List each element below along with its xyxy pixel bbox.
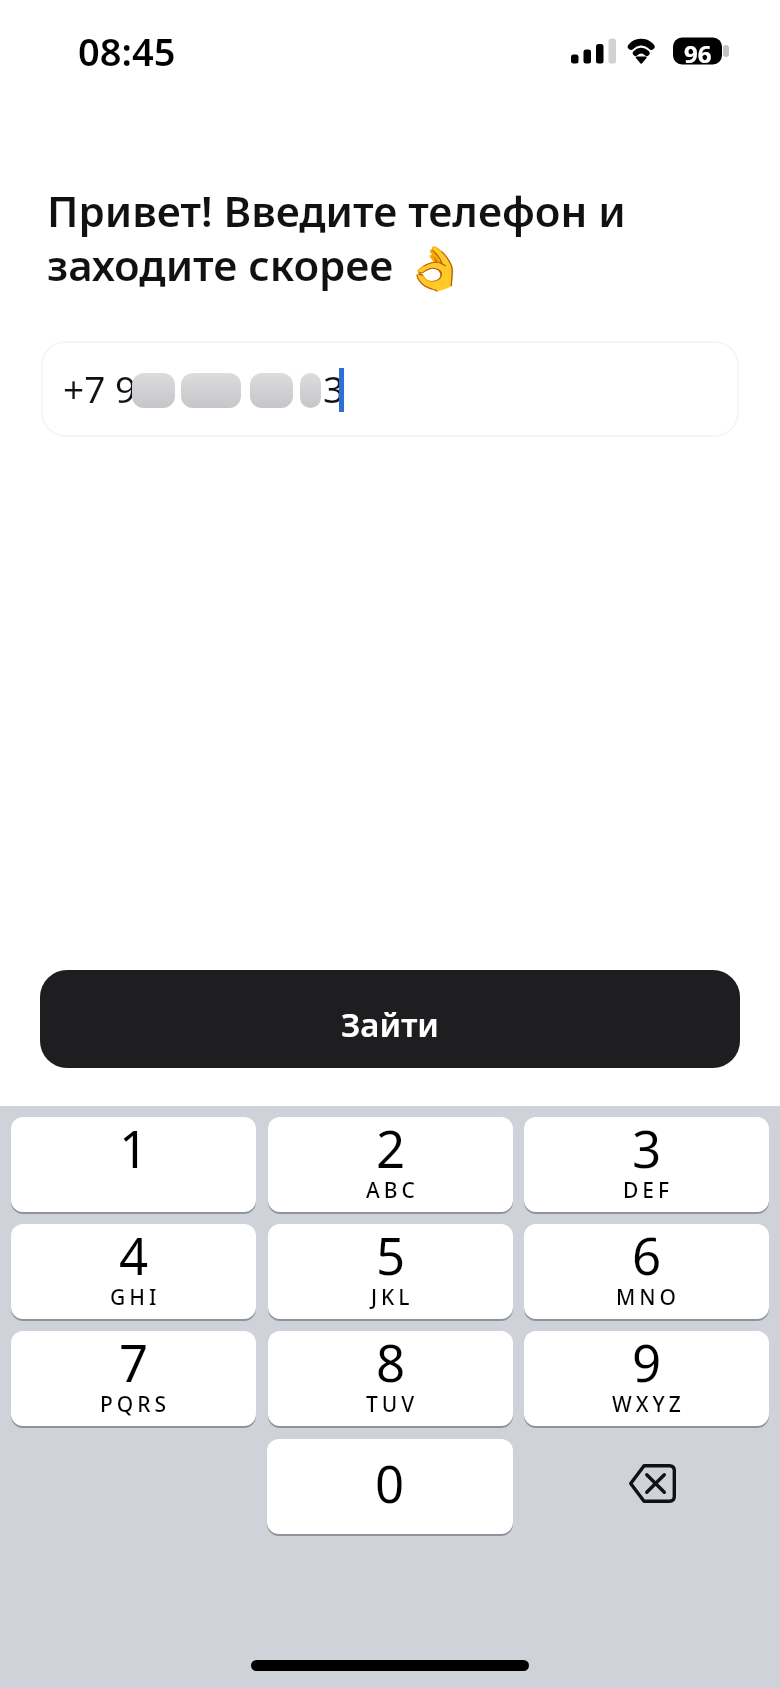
staticText: 96 bbox=[684, 37, 712, 64]
staticText: 1 bbox=[119, 1117, 149, 1182]
staticText: ABC bbox=[366, 1176, 419, 1205]
staticText: 08:45 bbox=[78, 25, 176, 77]
staticText: 6 bbox=[632, 1224, 662, 1289]
staticText: 👌 bbox=[400, 244, 471, 294]
button[interactable]: 6 bbox=[524, 1224, 769, 1319]
staticText: 5 bbox=[376, 1224, 406, 1289]
staticText: 0 bbox=[375, 1448, 405, 1517]
button[interactable]: 9 bbox=[524, 1331, 769, 1426]
staticText: 4 bbox=[119, 1224, 149, 1289]
button[interactable]: 7 bbox=[11, 1331, 256, 1426]
staticText: JKL bbox=[371, 1283, 414, 1312]
button[interactable]: 3 bbox=[524, 1117, 769, 1212]
staticText: 8 bbox=[376, 1331, 406, 1396]
staticText: TUV bbox=[366, 1390, 419, 1419]
staticText: PQRS bbox=[100, 1390, 171, 1419]
button[interactable]: 8 bbox=[268, 1331, 513, 1426]
staticText: Зайти bbox=[341, 1002, 439, 1047]
staticText: 2 bbox=[376, 1117, 406, 1182]
staticText: заходите скорее bbox=[47, 236, 394, 293]
button[interactable]: 2 bbox=[268, 1117, 513, 1212]
button[interactable]: Backspace bbox=[524, 1439, 769, 1534]
staticText: MNO bbox=[616, 1283, 681, 1312]
staticText: +7 9 bbox=[63, 363, 137, 413]
button[interactable]: 1 bbox=[11, 1117, 256, 1212]
button[interactable]: 5 bbox=[268, 1224, 513, 1319]
staticText: Привет! Введите телефон и bbox=[47, 182, 626, 239]
staticText: WXYZ bbox=[612, 1390, 685, 1419]
staticText: DEF bbox=[623, 1176, 674, 1205]
staticText: GHI bbox=[110, 1283, 161, 1312]
staticText: 3 bbox=[323, 363, 345, 413]
staticText: 7 bbox=[119, 1331, 149, 1396]
button[interactable]: Зайти bbox=[40, 970, 740, 1068]
staticText: 9 bbox=[632, 1331, 662, 1396]
button[interactable]: 4 bbox=[11, 1224, 256, 1319]
staticText: 3 bbox=[632, 1117, 662, 1182]
button[interactable]: 0 bbox=[267, 1439, 513, 1534]
button[interactable]: +7 9 bbox=[41, 341, 739, 437]
